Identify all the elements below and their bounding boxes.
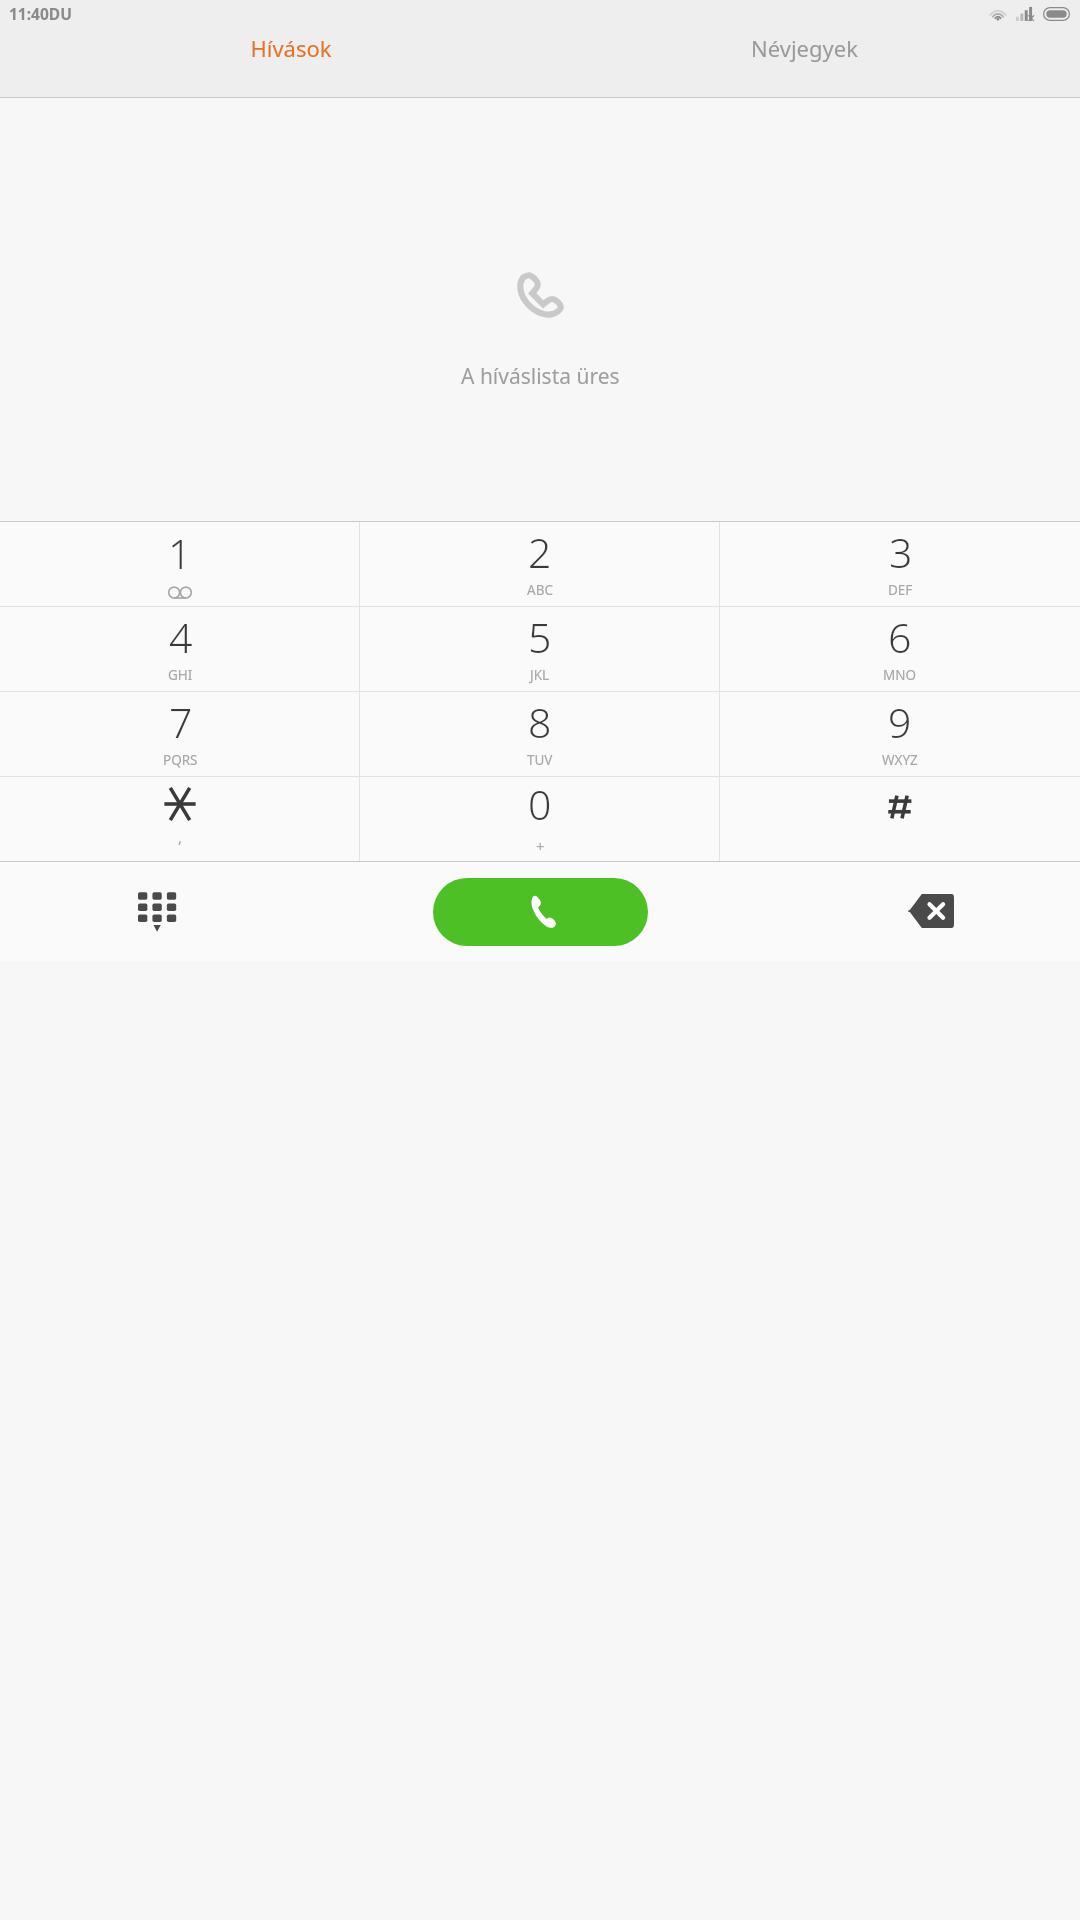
staticText: JKL: [530, 666, 550, 684]
staticText: TUV: [527, 751, 553, 769]
button[interactable]: Call: [433, 878, 648, 946]
staticText: 1: [168, 525, 192, 581]
button[interactable]: Backspace: [902, 882, 960, 940]
button[interactable]: Névjegyek: [540, 33, 1080, 63]
staticText: Névjegyek: [751, 33, 858, 63]
staticText: Hívások: [250, 33, 332, 63]
staticText: 11:40DU: [9, 3, 72, 24]
staticText: A híváslista üres: [461, 362, 620, 391]
staticText: 5: [528, 609, 552, 665]
staticText: ABC: [527, 581, 553, 599]
staticText: 0: [528, 776, 552, 832]
staticText: 8: [528, 694, 552, 750]
button[interactable]: 4: [0, 607, 360, 691]
button[interactable]: Hívások: [0, 33, 540, 63]
button[interactable]: 9: [720, 692, 1080, 776]
button[interactable]: 1: [0, 522, 360, 606]
button[interactable]: ,: [0, 777, 360, 861]
staticText: 6: [888, 609, 912, 665]
staticText: DEF: [888, 581, 913, 599]
staticText: MNO: [883, 666, 917, 684]
button[interactable]: 0: [360, 777, 720, 861]
button[interactable]: [720, 777, 1080, 861]
staticText: 7: [169, 694, 193, 750]
button[interactable]: 2: [360, 522, 720, 606]
button[interactable]: 6: [720, 607, 1080, 691]
staticText: 2: [528, 524, 552, 580]
staticText: 3: [889, 524, 913, 580]
staticText: ,: [178, 827, 183, 847]
button[interactable]: 7: [0, 692, 360, 776]
staticText: GHI: [168, 666, 193, 684]
button[interactable]: Hide dialpad: [130, 884, 184, 938]
staticText: PQRS: [163, 751, 198, 769]
staticText: 9: [888, 694, 912, 750]
staticText: WXYZ: [882, 751, 918, 769]
button[interactable]: 5: [360, 607, 720, 691]
button[interactable]: 8: [360, 692, 720, 776]
staticText: +: [536, 836, 545, 856]
button[interactable]: 3: [720, 522, 1080, 606]
staticText: 4: [169, 609, 193, 665]
